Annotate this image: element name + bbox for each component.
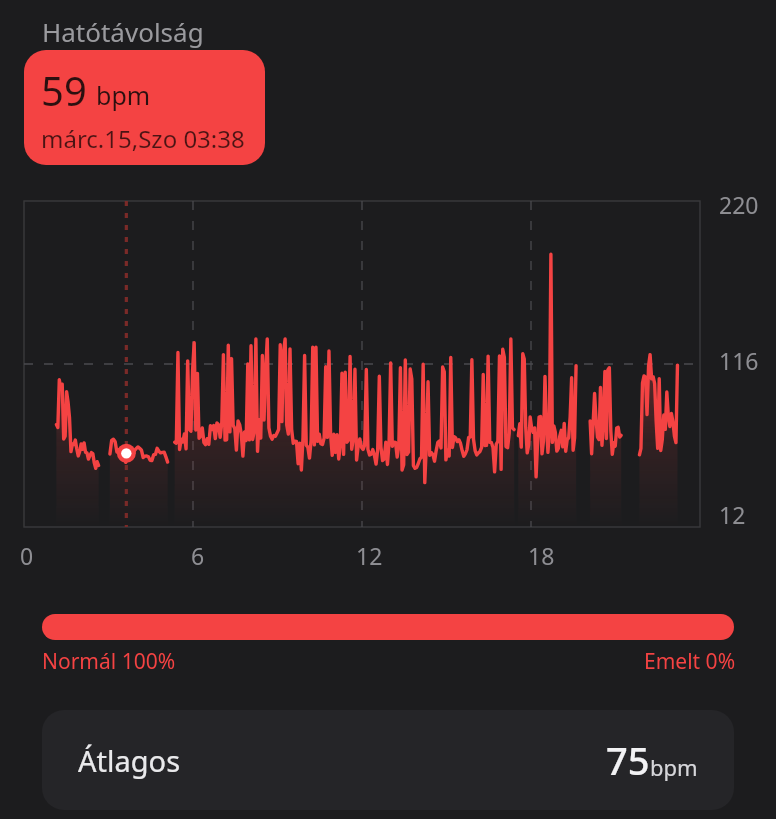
staticText: 0 bbox=[20, 540, 34, 571]
staticText: 63-99 bbox=[42, 78, 152, 135]
staticText: Normál 100% bbox=[42, 647, 176, 676]
button[interactable]: 59 bbox=[24, 50, 265, 165]
staticText: 18 bbox=[528, 540, 555, 571]
button[interactable]: Heart rate zones: Normal 100 percent bbox=[42, 614, 734, 640]
staticText: Emelt 0% bbox=[644, 647, 736, 676]
staticText: márc.15,Szo 03:38 bbox=[41, 122, 245, 155]
staticText: 75 bbox=[606, 734, 650, 786]
staticText: 59 bbox=[41, 63, 87, 117]
staticText: bpm bbox=[159, 94, 220, 132]
staticText: 220 bbox=[719, 189, 759, 220]
staticText: 12 bbox=[719, 499, 746, 530]
staticText: 6 bbox=[191, 540, 205, 571]
staticText: bpm bbox=[650, 752, 698, 782]
staticText: 12 bbox=[356, 540, 383, 571]
staticText: Hatótávolság bbox=[42, 14, 204, 49]
button[interactable]: Heart rate chart for today bbox=[0, 185, 776, 575]
staticText: Átlagos bbox=[78, 741, 181, 780]
staticText: 116 bbox=[719, 345, 759, 376]
staticText: ma bbox=[42, 138, 72, 165]
staticText: bpm bbox=[96, 78, 151, 112]
button[interactable]: Átlagos bbox=[42, 710, 734, 810]
